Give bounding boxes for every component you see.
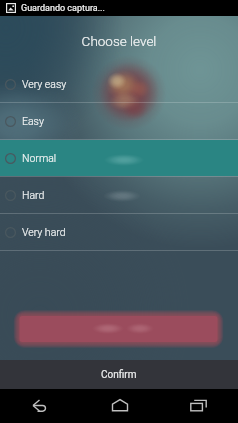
staticText: Confirm	[101, 369, 137, 381]
button[interactable]: Recents	[159, 389, 238, 423]
button[interactable]: Home	[80, 389, 159, 423]
staticText: Choose level	[0, 33, 238, 49]
staticText: Guardando captura...	[21, 3, 105, 14]
staticText: Normal	[22, 152, 57, 164]
other: Screenshot	[6, 3, 16, 13]
button[interactable]: Very hard	[0, 214, 238, 250]
button[interactable]: Easy	[0, 103, 238, 139]
staticText: Easy	[22, 115, 44, 127]
button[interactable]: Hard	[0, 177, 238, 213]
button[interactable]: Confirm	[0, 360, 238, 389]
staticText: Very hard	[22, 226, 66, 238]
staticText: Hard	[22, 189, 45, 201]
button[interactable]: Back	[0, 389, 80, 423]
button[interactable]: Very easy	[0, 66, 238, 102]
button[interactable]: Normal	[0, 140, 238, 176]
staticText: Very easy	[22, 78, 67, 90]
